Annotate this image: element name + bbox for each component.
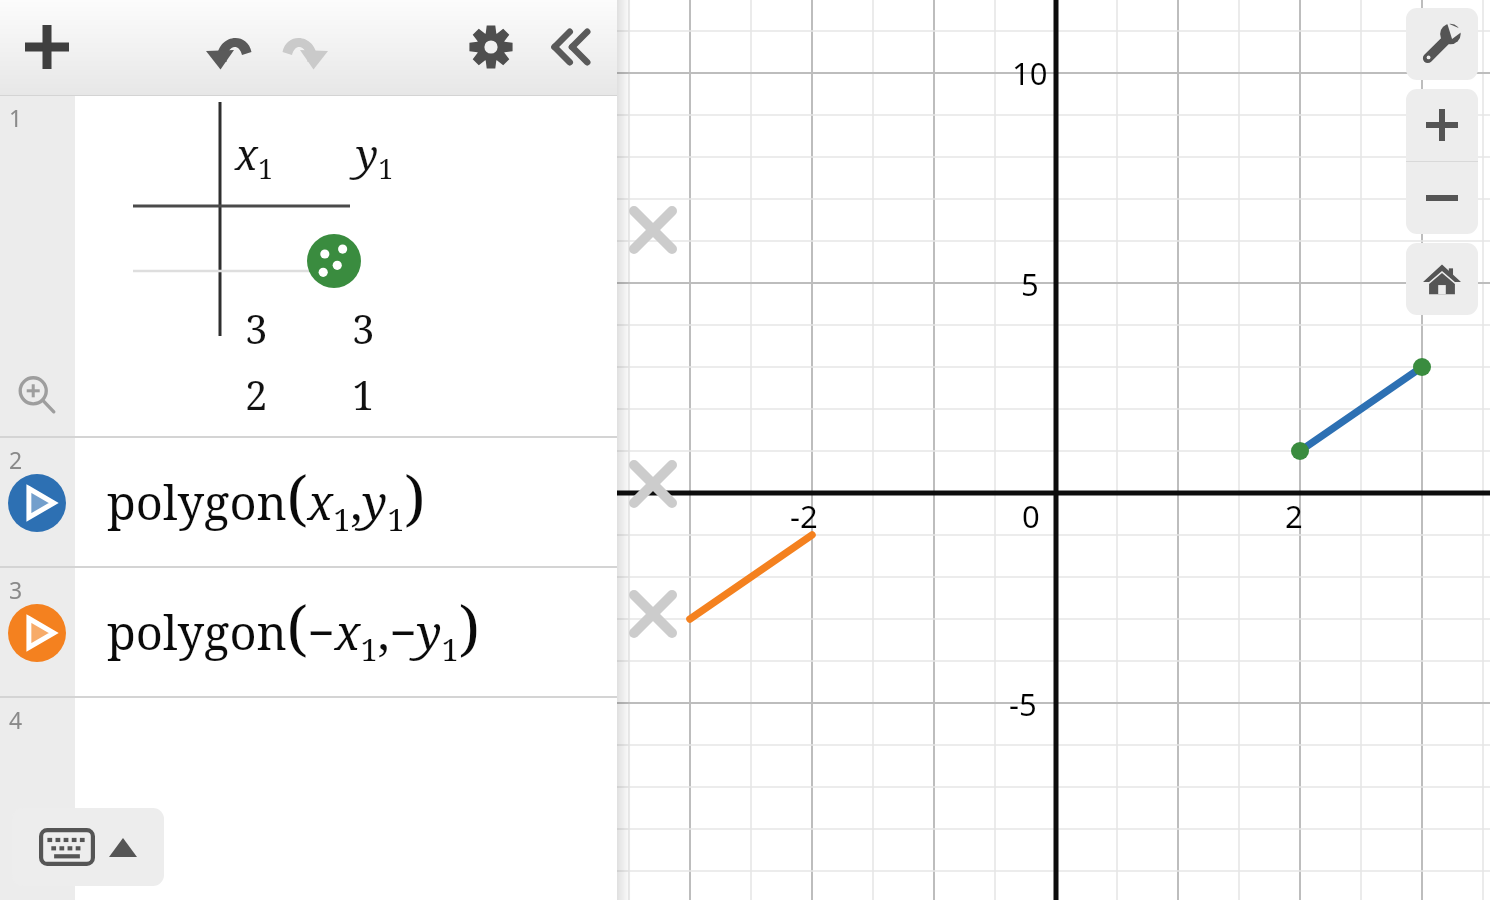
button[interactable]: Zoom in bbox=[1406, 89, 1478, 161]
staticText: polygon(x1,y1) bbox=[107, 456, 426, 540]
button[interactable]: Toggle visibility bbox=[8, 474, 66, 532]
staticText: 1 bbox=[352, 367, 375, 421]
button[interactable]: Redo bbox=[272, 14, 338, 80]
button[interactable]: Collapse panel bbox=[534, 14, 600, 80]
button[interactable]: Point style bbox=[307, 234, 361, 288]
staticText: 4 bbox=[9, 704, 23, 735]
staticText: 2 bbox=[9, 444, 23, 475]
button[interactable]: Delete bbox=[627, 458, 679, 510]
staticText: 3 bbox=[9, 574, 23, 605]
button[interactable]: 1 bbox=[0, 96, 617, 436]
button[interactable]: Show keypad bbox=[12, 808, 164, 886]
button[interactable]: Zoom out bbox=[1406, 162, 1478, 234]
staticText: 0 bbox=[1022, 495, 1040, 537]
staticText: 3 bbox=[352, 301, 375, 355]
staticText: y1 bbox=[356, 125, 394, 187]
staticText: 2 bbox=[245, 367, 268, 421]
staticText: 3 bbox=[245, 301, 268, 355]
button[interactable]: Settings bbox=[458, 14, 524, 80]
button[interactable]: Toggle visibility bbox=[8, 604, 66, 662]
staticText: 1 bbox=[9, 102, 23, 133]
button[interactable]: 2 bbox=[0, 438, 617, 566]
staticText: -5 bbox=[1009, 683, 1037, 725]
button[interactable]: Add item bbox=[14, 14, 80, 80]
button[interactable]: 3 bbox=[0, 568, 617, 696]
button[interactable]: Undo bbox=[196, 14, 262, 80]
staticText: 10 bbox=[1012, 52, 1048, 94]
button[interactable]: Graph settings bbox=[1406, 8, 1478, 80]
staticText: polygon(−x1,−y1) bbox=[107, 586, 480, 670]
button[interactable]: Zoom to fit bbox=[14, 372, 60, 418]
button[interactable]: Delete bbox=[627, 588, 679, 640]
staticText: 5 bbox=[1021, 263, 1039, 305]
button[interactable]: Reset view bbox=[1406, 243, 1478, 315]
button[interactable]: Delete bbox=[627, 204, 679, 256]
button[interactable]: 4 bbox=[0, 698, 617, 900]
staticText: x1 bbox=[235, 125, 274, 187]
staticText: 2 bbox=[1285, 495, 1303, 537]
staticText: -2 bbox=[790, 495, 818, 537]
